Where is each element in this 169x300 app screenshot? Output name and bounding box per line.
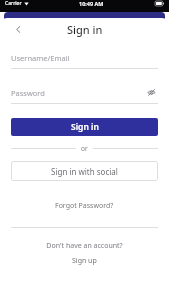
staticText: Sign in (71, 121, 99, 133)
button[interactable]: Forgot Password? (11, 199, 158, 213)
staticText: Carrier (5, 0, 22, 7)
staticText: Password (11, 88, 45, 98)
button[interactable]: Sign in (11, 118, 158, 136)
button[interactable]: Show password (145, 86, 158, 99)
button[interactable]: Sign up (11, 256, 158, 266)
staticText: Sign up (72, 256, 97, 266)
staticText: Sign in with social (51, 166, 118, 177)
staticText: Don't have an account? (11, 241, 158, 251)
staticText: Sign in (67, 22, 103, 37)
staticText: Username/Email (11, 53, 70, 63)
button[interactable]: Sign in with social (11, 161, 158, 181)
button[interactable]: Username/Email (11, 50, 158, 65)
staticText: Forgot Password? (55, 201, 114, 211)
staticText: 10:49 AM (79, 0, 104, 7)
button[interactable]: Back (11, 22, 25, 36)
staticText: or (81, 144, 88, 153)
button[interactable]: Password (11, 85, 158, 100)
